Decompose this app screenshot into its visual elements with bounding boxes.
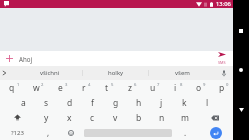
- button[interactable]: n: [150, 110, 173, 125]
- button[interactable]: Add recipient: [0, 51, 19, 66]
- button[interactable]: e: [48, 80, 72, 95]
- staticText: 5: [111, 82, 114, 88]
- button[interactable]: i: [164, 80, 187, 95]
- staticText: b: [136, 112, 142, 124]
- staticText: holky: [108, 69, 124, 77]
- staticText: 2: [41, 82, 44, 88]
- staticText: 6: [134, 82, 137, 88]
- button[interactable]: f: [81, 95, 104, 110]
- button[interactable]: Home: [233, 50, 249, 89]
- staticText: u: [150, 82, 156, 94]
- staticText: v: [113, 112, 118, 124]
- button[interactable]: .: [172, 125, 198, 140]
- staticText: 3: [65, 82, 68, 88]
- button[interactable]: o: [187, 80, 210, 95]
- staticText: z: [128, 82, 132, 94]
- button[interactable]: ?123: [0, 125, 34, 140]
- button[interactable]: d: [58, 95, 81, 110]
- staticText: všem: [175, 69, 190, 77]
- staticText: s: [44, 97, 49, 109]
- staticText: l: [206, 97, 209, 109]
- button[interactable]: Voice input: [215, 66, 233, 80]
- staticText: j: [160, 97, 163, 109]
- button[interactable]: Shift: [0, 110, 35, 125]
- button[interactable]: Back: [233, 90, 249, 129]
- button[interactable]: v: [104, 110, 127, 125]
- button[interactable]: j: [150, 95, 173, 110]
- button[interactable]: ,: [34, 125, 62, 140]
- staticText: .: [184, 127, 187, 138]
- staticText: t: [105, 82, 109, 94]
- button[interactable]: x: [58, 110, 81, 125]
- staticText: r: [82, 82, 86, 94]
- button[interactable]: c: [81, 110, 104, 125]
- button[interactable]: Send SMS: [211, 51, 233, 66]
- staticText: ?123: [11, 129, 24, 137]
- staticText: ,: [47, 127, 50, 138]
- staticText: 13:06: [216, 0, 231, 8]
- button[interactable]: g: [104, 95, 127, 110]
- staticText: všichni: [40, 69, 60, 77]
- staticText: 4: [88, 82, 91, 88]
- button[interactable]: všichni: [17, 66, 83, 80]
- staticText: m: [181, 112, 189, 124]
- button[interactable]: t: [95, 80, 118, 95]
- staticText: a: [21, 97, 26, 109]
- button[interactable]: a: [12, 95, 35, 110]
- button[interactable]: s: [35, 95, 58, 110]
- staticText: f: [91, 97, 94, 109]
- staticText: 0: [226, 82, 229, 88]
- staticText: c: [90, 112, 95, 124]
- staticText: 1: [17, 82, 20, 88]
- button[interactable]: m: [173, 110, 196, 125]
- staticText: y: [44, 112, 49, 124]
- button[interactable]: y: [35, 110, 58, 125]
- staticText: e: [58, 82, 63, 94]
- staticText: 8: [180, 82, 183, 88]
- button[interactable]: p: [210, 80, 233, 95]
- button[interactable]: More suggestions: [0, 66, 17, 80]
- button[interactable]: b: [127, 110, 150, 125]
- button[interactable]: holky: [83, 66, 149, 80]
- staticText: x: [67, 112, 72, 124]
- button[interactable]: z: [118, 80, 141, 95]
- button[interactable]: l: [196, 95, 219, 110]
- button[interactable]: k: [173, 95, 196, 110]
- button[interactable]: w: [24, 80, 48, 95]
- staticText: Ahoj: [19, 55, 33, 63]
- staticText: w: [33, 82, 40, 94]
- button[interactable]: Recents: [233, 11, 249, 50]
- staticText: SMS: [218, 60, 226, 65]
- button[interactable]: h: [127, 95, 150, 110]
- staticText: q: [9, 82, 15, 94]
- staticText: g: [113, 97, 119, 109]
- staticText: h: [136, 97, 142, 109]
- staticText: n: [159, 112, 165, 124]
- button[interactable]: všem: [149, 66, 215, 80]
- button[interactable]: q: [0, 80, 24, 95]
- staticText: k: [182, 97, 187, 109]
- button[interactable]: r: [72, 80, 95, 95]
- button[interactable]: Enter: [210, 127, 222, 139]
- staticText: p: [219, 82, 225, 94]
- button[interactable]: Backspace: [196, 110, 233, 125]
- staticText: d: [67, 97, 73, 109]
- staticText: i: [174, 82, 177, 94]
- staticText: 7: [157, 82, 160, 88]
- staticText: 9: [203, 82, 206, 88]
- staticText: o: [196, 82, 202, 94]
- button[interactable]: u: [141, 80, 164, 95]
- button[interactable]: Emoji: [62, 125, 80, 140]
